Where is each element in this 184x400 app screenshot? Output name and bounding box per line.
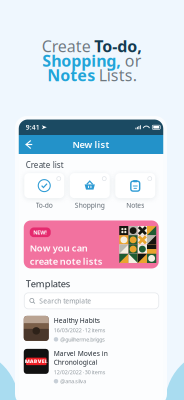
staticText: Lists. <box>99 64 137 86</box>
button[interactable]: Back <box>19 135 39 153</box>
staticText: 9:41 <box>26 123 40 132</box>
staticText: Marvel Movies in Chronological <box>54 349 108 367</box>
staticText: create note lists <box>30 255 103 267</box>
staticText: Create list <box>26 159 64 170</box>
staticText: Create <box>42 35 91 57</box>
staticText: 12/02/2022 · 30 items <box>54 369 106 376</box>
button[interactable]: MARVEL <box>19 346 163 388</box>
staticText: NEW! <box>33 229 47 236</box>
staticText: Templates <box>26 277 70 290</box>
staticText: Search template <box>39 296 91 305</box>
button[interactable]: Shopping <box>70 173 110 209</box>
staticText: Notes <box>47 64 95 86</box>
staticText: @ana.silva <box>60 378 86 385</box>
staticText: Shopping, <box>42 50 121 71</box>
staticText: Now you can <box>30 242 88 254</box>
staticText: @guilherme.briggs <box>60 336 105 343</box>
staticText: MARVEL <box>25 358 48 365</box>
staticText: or <box>125 50 142 71</box>
button[interactable]: Healthy Habits <box>19 313 163 346</box>
button[interactable]: Notes <box>115 173 155 209</box>
staticText: To-do, <box>94 35 142 57</box>
staticText: Healthy Habits <box>54 316 100 325</box>
staticText: Notes <box>126 201 144 209</box>
staticText: Shopping <box>75 201 105 209</box>
button[interactable]: To-do <box>24 173 64 209</box>
staticText: To-do <box>36 201 53 209</box>
staticText: New list <box>72 138 109 151</box>
button[interactable]: NEW! <box>24 220 159 268</box>
staticText: 16/03/2022 · 12 items <box>54 327 106 334</box>
